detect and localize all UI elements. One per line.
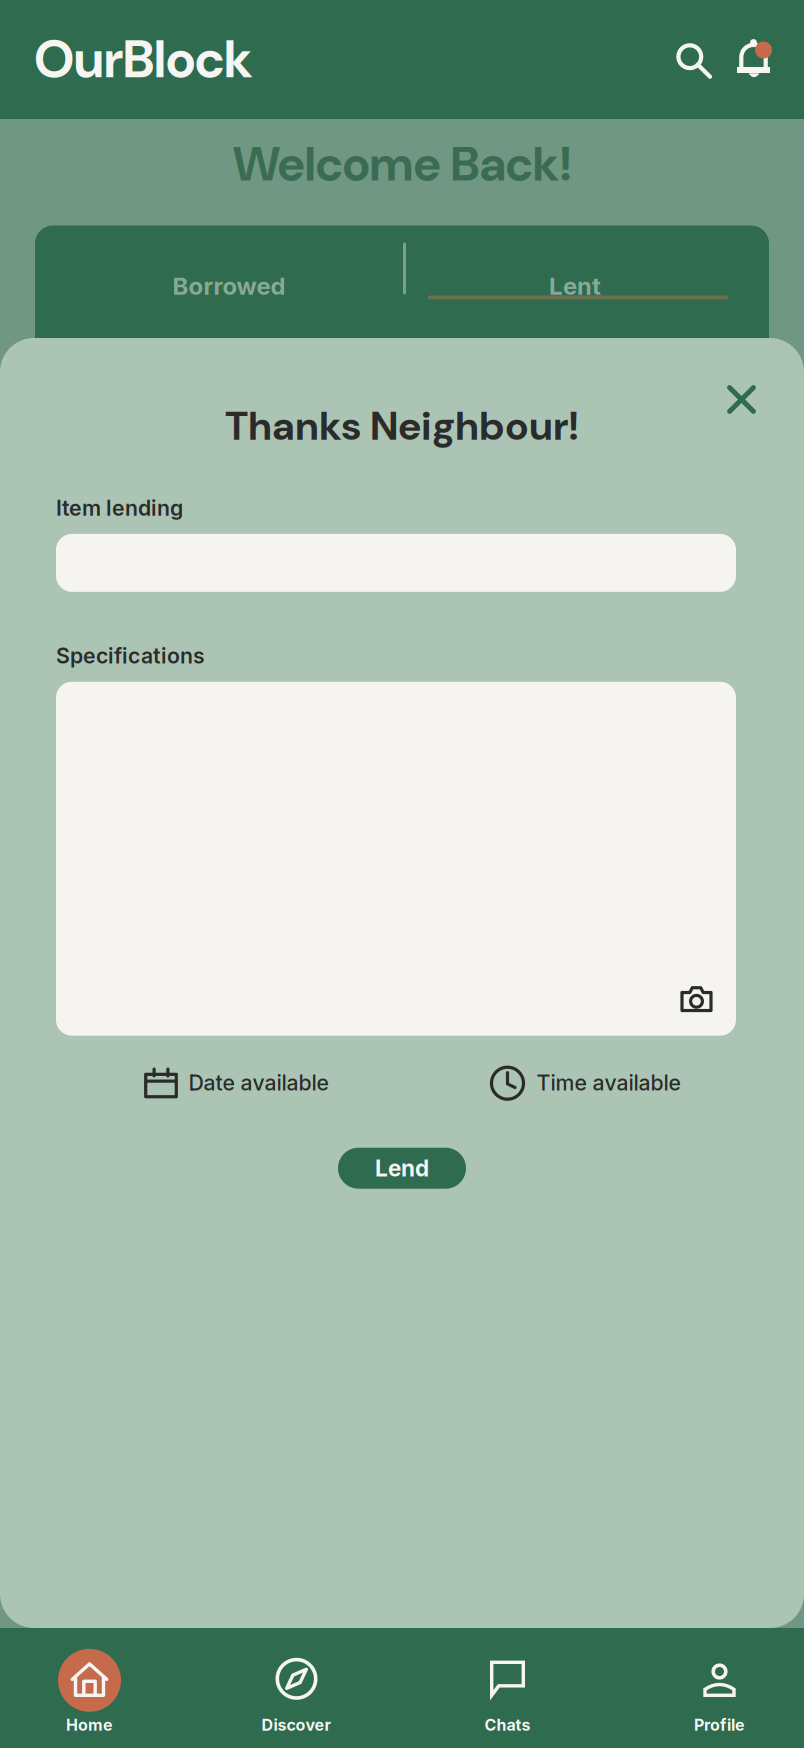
button[interactable]: Date available — [143, 1066, 328, 1100]
button[interactable]: Discover — [201, 1625, 402, 1748]
staticText: Time available — [536, 1070, 680, 1096]
staticText: Welcome Back! — [232, 133, 571, 195]
staticText: Profile — [694, 1715, 745, 1735]
button[interactable]: Close — [727, 385, 756, 414]
button[interactable]: Add photo — [680, 985, 713, 1013]
staticText: Item lending — [56, 495, 183, 521]
button[interactable]: Time available — [488, 1065, 680, 1101]
button[interactable]: Notifications — [734, 38, 774, 80]
staticText: Date available — [188, 1070, 328, 1096]
staticText: Borrowed — [172, 271, 285, 300]
staticText: Thanks Neighbour! — [225, 400, 579, 452]
staticText: Lent — [549, 271, 601, 300]
button[interactable]: Chats — [402, 1625, 603, 1748]
staticText: Discover — [261, 1715, 331, 1735]
staticText: OurBlock — [34, 26, 253, 93]
button[interactable]: Profile — [603, 1625, 804, 1748]
button[interactable]: Home — [0, 1625, 201, 1748]
button[interactable]: Lend — [338, 1148, 466, 1189]
staticText: Home — [66, 1715, 113, 1735]
staticText: Chats — [484, 1715, 530, 1735]
staticText: Lend — [375, 1154, 429, 1182]
staticText: Specifications — [56, 643, 205, 669]
button[interactable]: Search — [675, 40, 713, 78]
